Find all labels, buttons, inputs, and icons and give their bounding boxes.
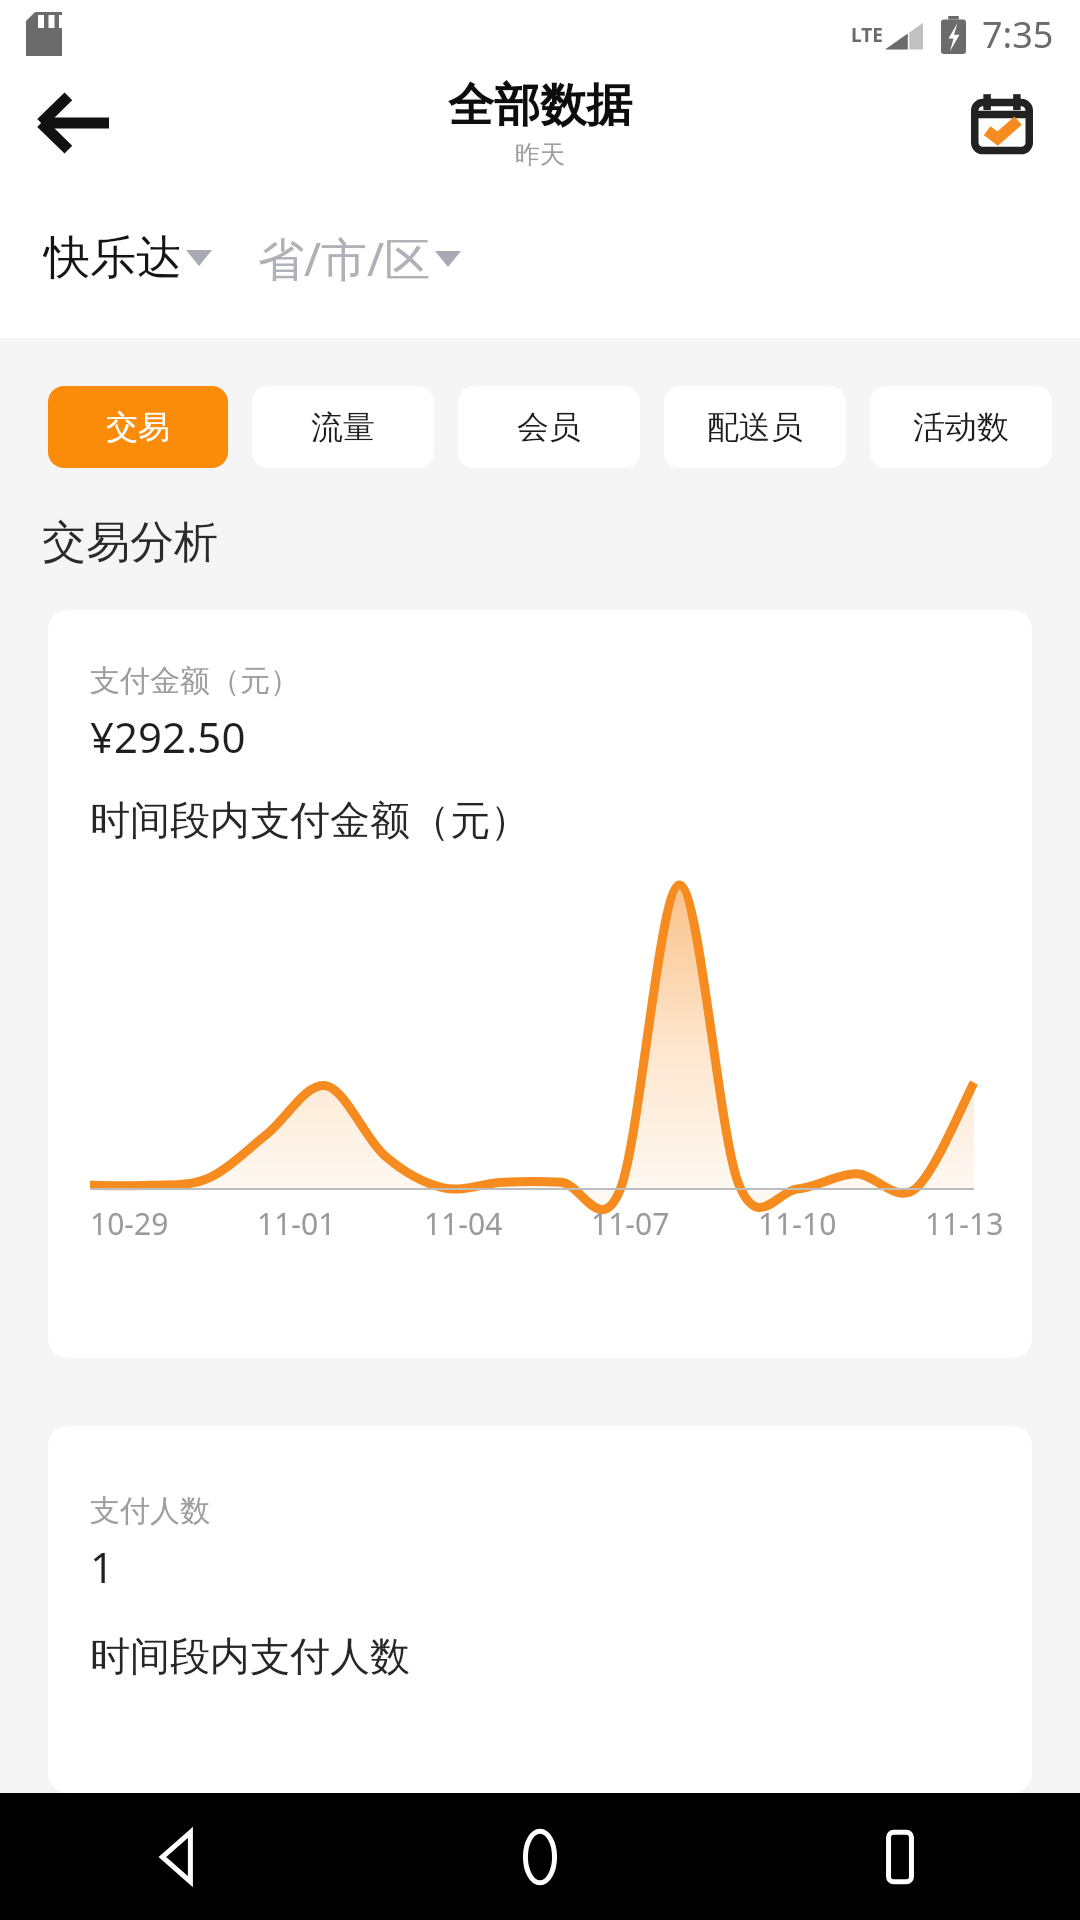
staticText: 11-10 (758, 1203, 837, 1244)
button[interactable]: Home (360, 1793, 720, 1920)
button[interactable]: 支付人数 (48, 1426, 1032, 1793)
staticText: 会员 (517, 407, 581, 447)
button[interactable]: Recent apps (720, 1793, 1080, 1920)
button[interactable]: 活动数 (870, 386, 1052, 468)
staticText: 7:35 (982, 10, 1054, 59)
staticText: 时间段内支付人数 (90, 1631, 410, 1681)
button[interactable]: 配送员 (664, 386, 846, 468)
staticText: 省/市/区 (258, 227, 431, 290)
staticText: 支付金额（元） (90, 662, 300, 700)
staticText: 配送员 (707, 407, 803, 447)
button[interactable]: Back (24, 73, 124, 173)
staticText: 11-13 (925, 1203, 1004, 1244)
staticText: 快乐达 (44, 229, 182, 287)
button[interactable]: 省/市/区 (258, 227, 461, 290)
staticText: 交易 (106, 407, 170, 447)
staticText: 流量 (311, 407, 375, 447)
button[interactable]: 支付金额（元） (48, 610, 1032, 1358)
button[interactable]: Back (0, 1793, 360, 1920)
staticText: 10-29 (90, 1203, 169, 1244)
button[interactable]: Select date (954, 75, 1050, 171)
staticText: 11-04 (424, 1203, 503, 1244)
staticText: 昨天 (515, 139, 565, 170)
button[interactable]: 快乐达 (44, 229, 212, 287)
button[interactable]: 流量 (252, 386, 434, 468)
staticText: 时间段内支付金额（元） (90, 795, 530, 845)
staticText: 交易分析 (42, 515, 218, 570)
staticText: LTE (851, 22, 883, 48)
button[interactable]: 交易 (48, 386, 228, 468)
staticText: ¥292.50 (90, 708, 246, 765)
button[interactable]: 会员 (458, 386, 640, 468)
staticText: 11-07 (591, 1203, 670, 1244)
staticText: 11-01 (257, 1203, 336, 1244)
staticText: 全部数据 (448, 77, 632, 135)
staticText: 支付人数 (90, 1492, 210, 1530)
staticText: 1 (90, 1538, 115, 1595)
staticText: 活动数 (913, 407, 1009, 447)
